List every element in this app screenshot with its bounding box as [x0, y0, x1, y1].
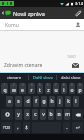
button[interactable]: Add contact — [72, 19, 84, 31]
button[interactable]: j — [57, 96, 63, 107]
staticText: Další slovo — [33, 75, 53, 80]
staticText: 0 — [79, 83, 81, 87]
button[interactable]: Další slovo — [29, 73, 56, 82]
button[interactable]: l — [73, 96, 79, 107]
staticText: r — [30, 87, 33, 94]
button[interactable]: Voice input — [23, 122, 30, 133]
staticText: 6 — [47, 83, 49, 87]
staticText: j — [59, 98, 61, 105]
staticText: c — [34, 111, 37, 118]
button[interactable]: a — [6, 96, 13, 107]
staticText: l — [75, 98, 77, 105]
staticText: b — [49, 111, 53, 118]
button[interactable]: 9 — [69, 83, 75, 94]
staticText: 7 — [55, 83, 57, 87]
button[interactable]: m — [64, 109, 70, 120]
button[interactable]: 4 — [28, 83, 35, 94]
staticText: z — [47, 87, 50, 94]
staticText: g — [42, 98, 46, 105]
button[interactable]: y — [15, 109, 22, 120]
staticText: p — [78, 87, 82, 94]
button[interactable]: Attach — [73, 7, 84, 19]
button[interactable]: 3 — [19, 83, 26, 94]
staticText: 1 — [4, 83, 6, 87]
staticText: k — [67, 98, 70, 105]
staticText: s — [17, 98, 20, 105]
staticText: e — [21, 87, 24, 94]
staticText: 5 — [39, 83, 41, 87]
button[interactable]: , — [14, 122, 21, 133]
staticText: Zdravim ctenare — [4, 62, 67, 69]
staticText: 9 — [71, 83, 73, 87]
staticText: dalsi slovo — [61, 75, 81, 80]
button[interactable]: x — [24, 109, 30, 120]
button[interactable]: b — [48, 109, 54, 120]
staticText: 160/1 — [67, 54, 77, 59]
staticText: ctenare — [7, 75, 22, 80]
button[interactable]: s — [15, 96, 22, 107]
button[interactable]: 0 — [77, 83, 83, 94]
button[interactable]: 5 — [37, 83, 43, 94]
staticText: x — [26, 111, 29, 118]
staticText: 2 — [13, 83, 15, 87]
button[interactable]: n — [56, 109, 62, 120]
button[interactable]: v — [40, 109, 46, 120]
button[interactable]: Enter — [72, 122, 83, 133]
button[interactable]: d — [24, 96, 31, 107]
button[interactable]: 7 — [53, 83, 59, 94]
staticText: w — [12, 87, 16, 94]
staticText: 3:14 — [75, 1, 83, 6]
button[interactable]: . — [63, 122, 70, 133]
staticText: n — [57, 111, 61, 118]
button[interactable]: h — [49, 96, 55, 107]
button[interactable]: 2 — [10, 83, 17, 94]
staticText: v — [42, 111, 45, 118]
button[interactable]: Shift — [1, 109, 13, 120]
button[interactable]: dalsi slovo — [57, 73, 84, 82]
button[interactable]: g — [41, 96, 47, 107]
button[interactable]: ctenare — [0, 73, 28, 82]
staticText: 4 — [31, 83, 33, 87]
staticText: 3 — [22, 83, 24, 87]
staticText: a — [8, 98, 11, 105]
button[interactable]: 1 — [1, 83, 8, 94]
staticText: h — [50, 98, 54, 105]
button[interactable]: ?123 — [1, 122, 12, 133]
staticText: m — [65, 111, 70, 118]
button[interactable]: Back — [0, 7, 5, 19]
staticText: 8 — [63, 83, 65, 87]
staticText: Nová zpráva — [13, 10, 45, 17]
button[interactable]: Send message — [67, 58, 84, 72]
staticText: , — [17, 124, 19, 131]
staticText: y — [17, 111, 20, 118]
staticText: ?123 — [3, 126, 10, 130]
button[interactable]: f — [33, 96, 39, 107]
staticText: u — [54, 87, 58, 94]
staticText: Komu — [5, 22, 19, 29]
button[interactable]: Backspace — [72, 109, 83, 120]
staticText: t — [39, 87, 41, 94]
staticText: q — [3, 87, 7, 94]
button[interactable]: 8 — [61, 83, 67, 94]
staticText: d — [26, 98, 30, 105]
button[interactable]: k — [65, 96, 71, 107]
staticText: o — [70, 87, 74, 94]
staticText: i — [63, 87, 65, 94]
staticText: f — [35, 98, 37, 105]
button[interactable]: c — [32, 109, 38, 120]
button[interactable]: 6 — [45, 83, 51, 94]
staticText: . — [66, 124, 68, 131]
